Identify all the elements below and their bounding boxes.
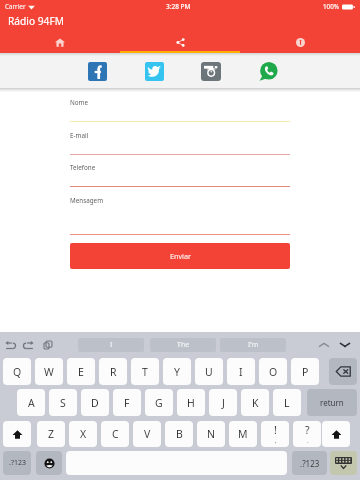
button[interactable]: I [227,358,255,385]
staticText: Z [48,427,55,441]
button[interactable]: A [17,389,45,416]
button[interactable]: Hide keyboard [330,451,357,475]
staticText: G [155,396,163,410]
button[interactable]: ? [293,421,321,447]
button[interactable]: return [307,389,357,416]
button[interactable]: P [291,358,319,385]
staticText: .?123 [300,458,320,469]
button[interactable]: I [78,338,144,352]
staticText: S [60,396,66,410]
button[interactable]: Twitter [145,62,164,81]
staticText: Enviar [170,251,191,261]
button[interactable]: .?123 [3,451,31,475]
staticText: T [142,365,148,379]
staticText: E-mail [70,131,89,140]
button[interactable]: Q [3,358,31,385]
button[interactable]: U [195,358,223,385]
staticText: I [239,365,243,379]
staticText: ? [305,423,310,437]
button[interactable]: H [177,389,205,416]
button[interactable]: Home [0,32,120,53]
other: Undo [5,340,16,350]
button[interactable]: C [101,421,129,447]
staticText: I'm [248,340,259,350]
staticText: , [275,437,277,445]
button[interactable]: Y [163,358,191,385]
button[interactable]: S [49,389,77,416]
other: Previous suggestion [318,341,330,349]
staticText: Rádio 94FM [8,14,64,28]
staticText: Carrier [5,2,26,11]
button[interactable]: ! [261,421,289,447]
staticText: K [252,396,259,410]
button[interactable]: M [229,421,257,447]
button[interactable]: Shift [3,421,31,447]
staticText: J [222,396,225,410]
other: Redo [23,340,34,350]
button[interactable]: Share [120,32,240,53]
staticText: 100% [323,2,340,11]
button[interactable]: J [209,389,237,416]
button[interactable]: Emoji [36,451,62,475]
button[interactable]: .?123 [292,451,327,475]
staticText: . [307,437,309,445]
staticText: O [269,365,278,379]
staticText: R [110,365,117,379]
staticText: P [302,365,309,379]
button[interactable]: N [197,421,225,447]
staticText: E [78,365,84,379]
staticText: The [177,340,190,350]
button[interactable]: F [113,389,141,416]
button[interactable]: T [131,358,159,385]
staticText: H [187,396,195,410]
staticText: N [207,427,215,441]
button[interactable]: Instagram [201,62,221,81]
staticText: V [144,427,151,441]
other: Paste [43,340,53,350]
staticText: return [320,397,344,408]
staticText: Telefone [70,163,96,172]
staticText: Q [13,365,22,379]
button[interactable]: W [35,358,63,385]
staticText: 3:28 PM [166,2,191,11]
button[interactable]: K [241,389,269,416]
staticText: A [28,396,35,410]
button[interactable]: The [150,338,216,352]
button[interactable]: Facebook [88,62,107,81]
button[interactable]: V [133,421,161,447]
staticText: Nome [70,98,89,107]
staticText: F [124,396,130,410]
button[interactable]: O [259,358,287,385]
button[interactable]: L [273,389,301,416]
button[interactable]: R [99,358,127,385]
button[interactable]: WhatsApp [258,62,278,81]
button[interactable]: B [165,421,193,447]
staticText: W [44,365,54,379]
staticText: U [205,365,213,379]
staticText: C [112,427,119,441]
button[interactable]: I'm [220,338,286,352]
button[interactable]: X [69,421,97,447]
button[interactable]: E [67,358,95,385]
staticText: L [284,396,290,410]
staticText: B [176,427,183,441]
button[interactable]: Enviar [70,243,290,269]
staticText: Mensagem [70,196,104,205]
staticText: Y [174,365,180,379]
button[interactable]: Z [37,421,65,447]
button[interactable]: G [145,389,173,416]
staticText: D [91,396,99,410]
other: Next suggestion [339,341,351,349]
staticText: X [80,427,87,441]
button[interactable]: D [81,389,109,416]
staticText: M [238,427,248,441]
staticText: .?123 [9,458,26,468]
button[interactable]: Info [240,32,360,53]
staticText: ! [274,423,277,437]
button[interactable]: Shift [322,421,350,447]
button[interactable]: Backspace [329,358,357,385]
staticText: I [110,340,113,350]
